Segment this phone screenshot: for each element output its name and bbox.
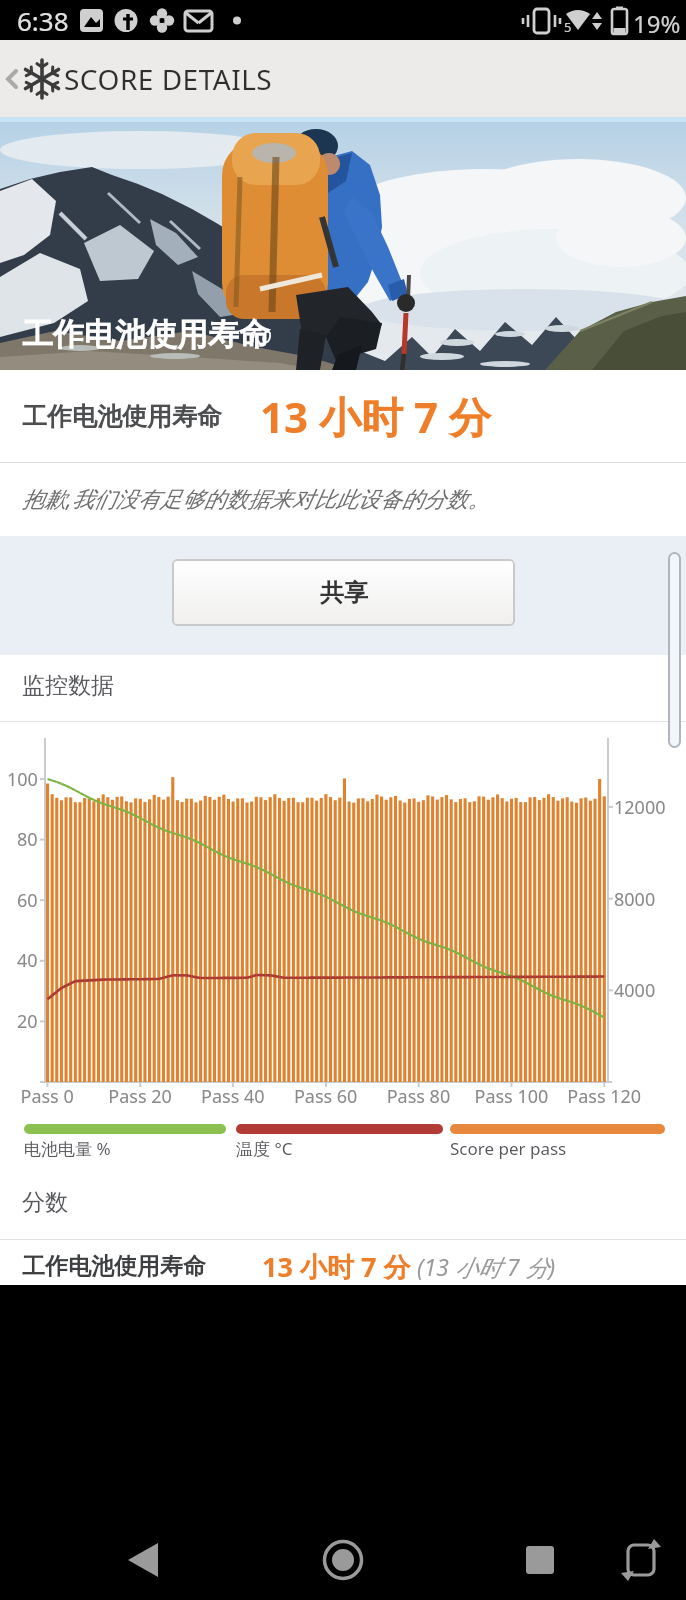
staticText: 监控数据 — [22, 671, 114, 700]
button[interactable] — [515, 1535, 565, 1585]
staticText: 分数 — [22, 1188, 68, 1217]
staticText: 工作电池使用寿命 — [22, 1252, 206, 1281]
staticText: 共享 — [320, 578, 368, 608]
staticText: 工作电池使用寿命 — [22, 315, 270, 354]
button[interactable] — [618, 1533, 668, 1583]
button[interactable]: 共享 — [172, 559, 515, 626]
staticText: (13 小时 7 分) — [411, 1251, 556, 1282]
button[interactable] — [318, 1535, 368, 1585]
staticText: 13 小时 7 分 — [262, 1248, 411, 1285]
button[interactable] — [118, 1533, 168, 1583]
button[interactable]: SCORE DETAILS — [0, 40, 686, 117]
staticText: 温度 °C — [236, 1137, 293, 1160]
staticText: 6:38 — [17, 3, 69, 38]
staticText: 抱歉,我们没有足够的数据来对比此设备的分数。 — [22, 483, 490, 513]
staticText: 19% — [633, 7, 681, 40]
staticText: 电池电量 % — [24, 1137, 111, 1160]
staticText: 工作电池使用寿命 — [22, 401, 222, 432]
staticText: 1.0 — [248, 325, 272, 348]
staticText: Score per pass — [450, 1137, 567, 1160]
staticText: 13 小时 7 分 — [260, 388, 491, 445]
staticText: SCORE DETAILS — [64, 60, 273, 98]
staticText: 5 — [564, 18, 572, 36]
